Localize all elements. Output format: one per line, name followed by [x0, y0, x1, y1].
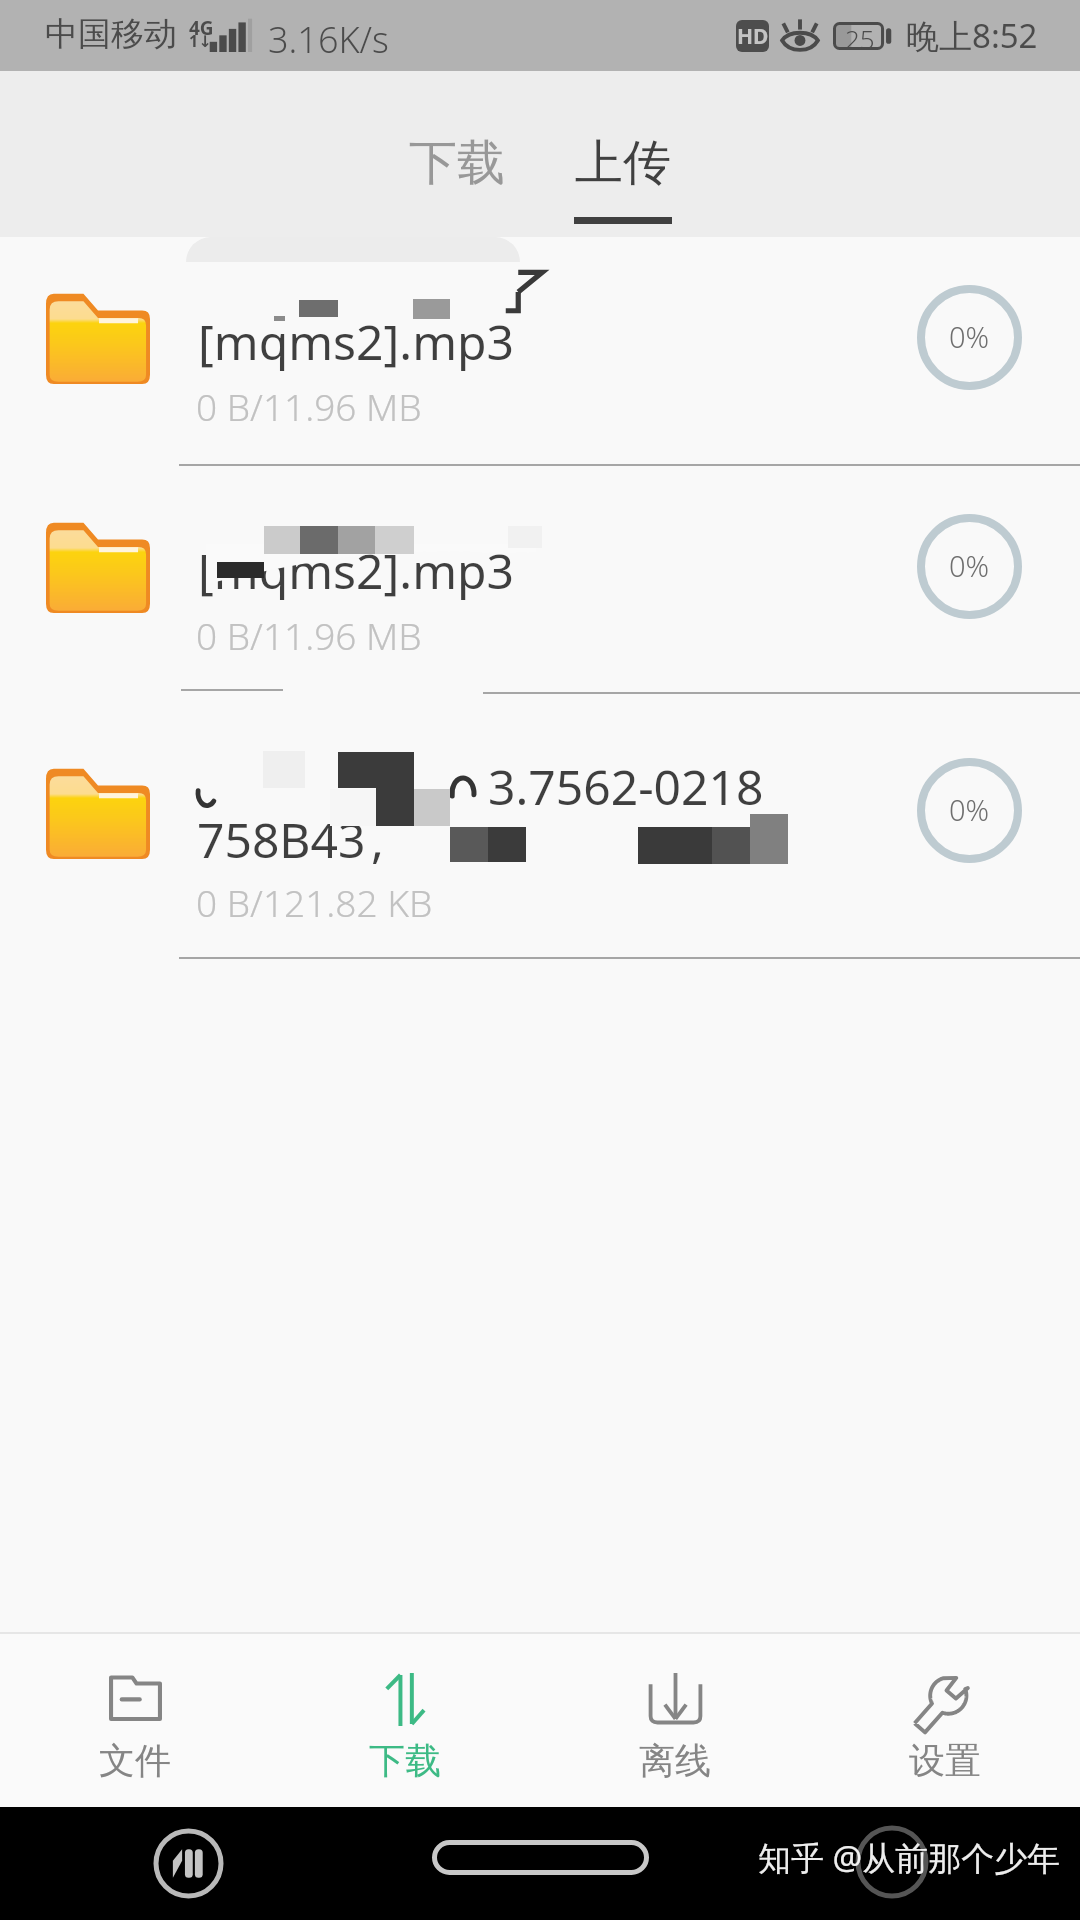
staticText: 晚上8:52 — [906, 13, 1038, 58]
button[interactable]: 文件 — [0, 1634, 270, 1807]
staticText: 0 B/121.82 KB — [196, 877, 433, 927]
staticText: 下载 — [409, 133, 505, 193]
button[interactable]: 下载 — [391, 126, 523, 200]
staticText: 1↓ — [189, 30, 212, 52]
staticText: [mqms2].mp3 — [198, 309, 515, 374]
staticText: 0% — [949, 790, 990, 829]
staticText: 0 B/11.96 MB — [196, 610, 422, 660]
staticText: [mqms2].mp3 — [198, 538, 515, 603]
staticText: 4G — [189, 15, 214, 41]
staticText: 上传 — [575, 133, 671, 193]
button[interactable]: 离线 — [540, 1634, 810, 1807]
button[interactable]: [mqms2].mp3 — [0, 237, 1080, 466]
staticText: 文件 — [99, 1738, 171, 1783]
staticText: 知乎 @从前那个少年 — [758, 1835, 1061, 1880]
staticText: 0 B/11.96 MB — [196, 381, 422, 431]
button[interactable]: 下载 — [270, 1634, 540, 1807]
staticText: 中国移动 — [45, 13, 177, 55]
staticText: 3.7562-0218 — [488, 754, 764, 819]
staticText: 25 — [845, 21, 875, 49]
staticText: 0% — [949, 317, 990, 356]
staticText: 设置 — [909, 1738, 981, 1783]
staticText: 下载 — [369, 1738, 441, 1783]
button[interactable]: 上传 — [557, 126, 689, 224]
staticText: 758B43 — [197, 807, 366, 872]
staticText: 0% — [949, 546, 990, 585]
staticText: HD — [737, 22, 769, 51]
button[interactable]: [mqms2].mp3 — [0, 466, 1080, 694]
staticText: 离线 — [639, 1738, 711, 1783]
button[interactable]: 3.7562-0218 — [0, 694, 1080, 959]
staticText: 3.16K/s — [268, 15, 389, 64]
button[interactable]: 设置 — [810, 1634, 1080, 1807]
staticText: , — [371, 807, 384, 872]
